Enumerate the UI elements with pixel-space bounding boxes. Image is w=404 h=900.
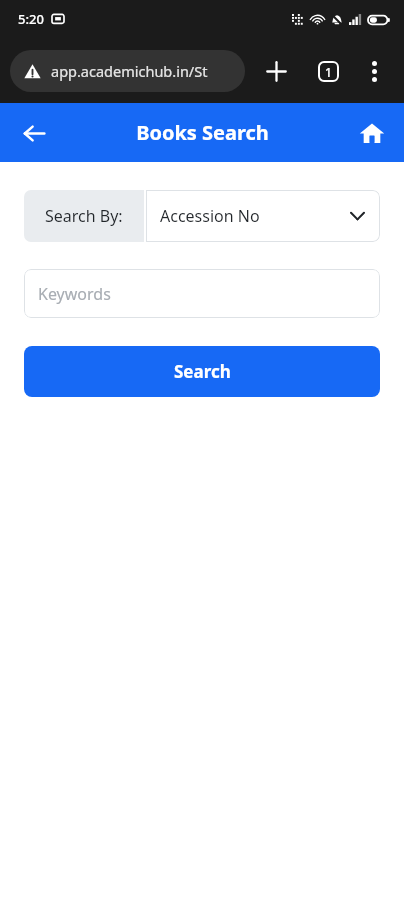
staticText: Books Search <box>136 119 269 146</box>
staticText: Search <box>174 360 231 383</box>
button[interactable]: Back <box>12 111 56 155</box>
staticText: app.academichub.in/St <box>51 61 208 81</box>
button[interactable]: New tab <box>254 49 298 93</box>
button[interactable]: Search <box>24 346 380 397</box>
button[interactable]: Keywords <box>24 269 380 318</box>
button[interactable]: app.academichub.in/St <box>10 50 245 92</box>
button[interactable]: Search By: <box>24 190 144 242</box>
button[interactable]: More options <box>354 51 394 91</box>
staticText: Accession No <box>160 205 260 227</box>
button[interactable]: Switch tabs, 1 tab <box>306 49 350 93</box>
button[interactable]: Home <box>350 111 394 155</box>
button[interactable]: Accession No <box>146 190 380 242</box>
staticText: 5:20 <box>18 10 44 28</box>
staticText: 1 <box>325 64 332 80</box>
staticText: Search By: <box>45 205 123 227</box>
staticText: Keywords <box>38 283 111 305</box>
